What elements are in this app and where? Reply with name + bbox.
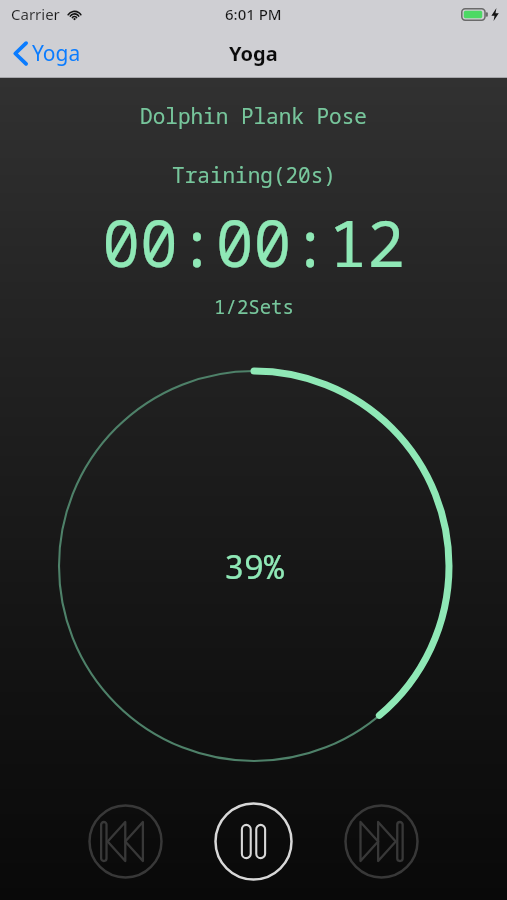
staticText: Yoga [32, 39, 81, 68]
staticText: 6:01 PM [225, 4, 282, 24]
button[interactable]: Previous [88, 804, 163, 879]
staticText: Training(20s) [172, 161, 336, 190]
staticText: 39% [224, 544, 284, 589]
staticText: Dolphin Plank Pose [140, 102, 367, 131]
staticText: Yoga [229, 40, 278, 67]
button[interactable]: Pause [214, 802, 293, 881]
button[interactable]: Next [344, 804, 419, 879]
staticText: 1/2Sets [214, 294, 294, 320]
staticText: Carrier [11, 4, 60, 24]
staticText: 00:00:12 [102, 200, 405, 286]
button[interactable]: Yoga [0, 31, 97, 76]
